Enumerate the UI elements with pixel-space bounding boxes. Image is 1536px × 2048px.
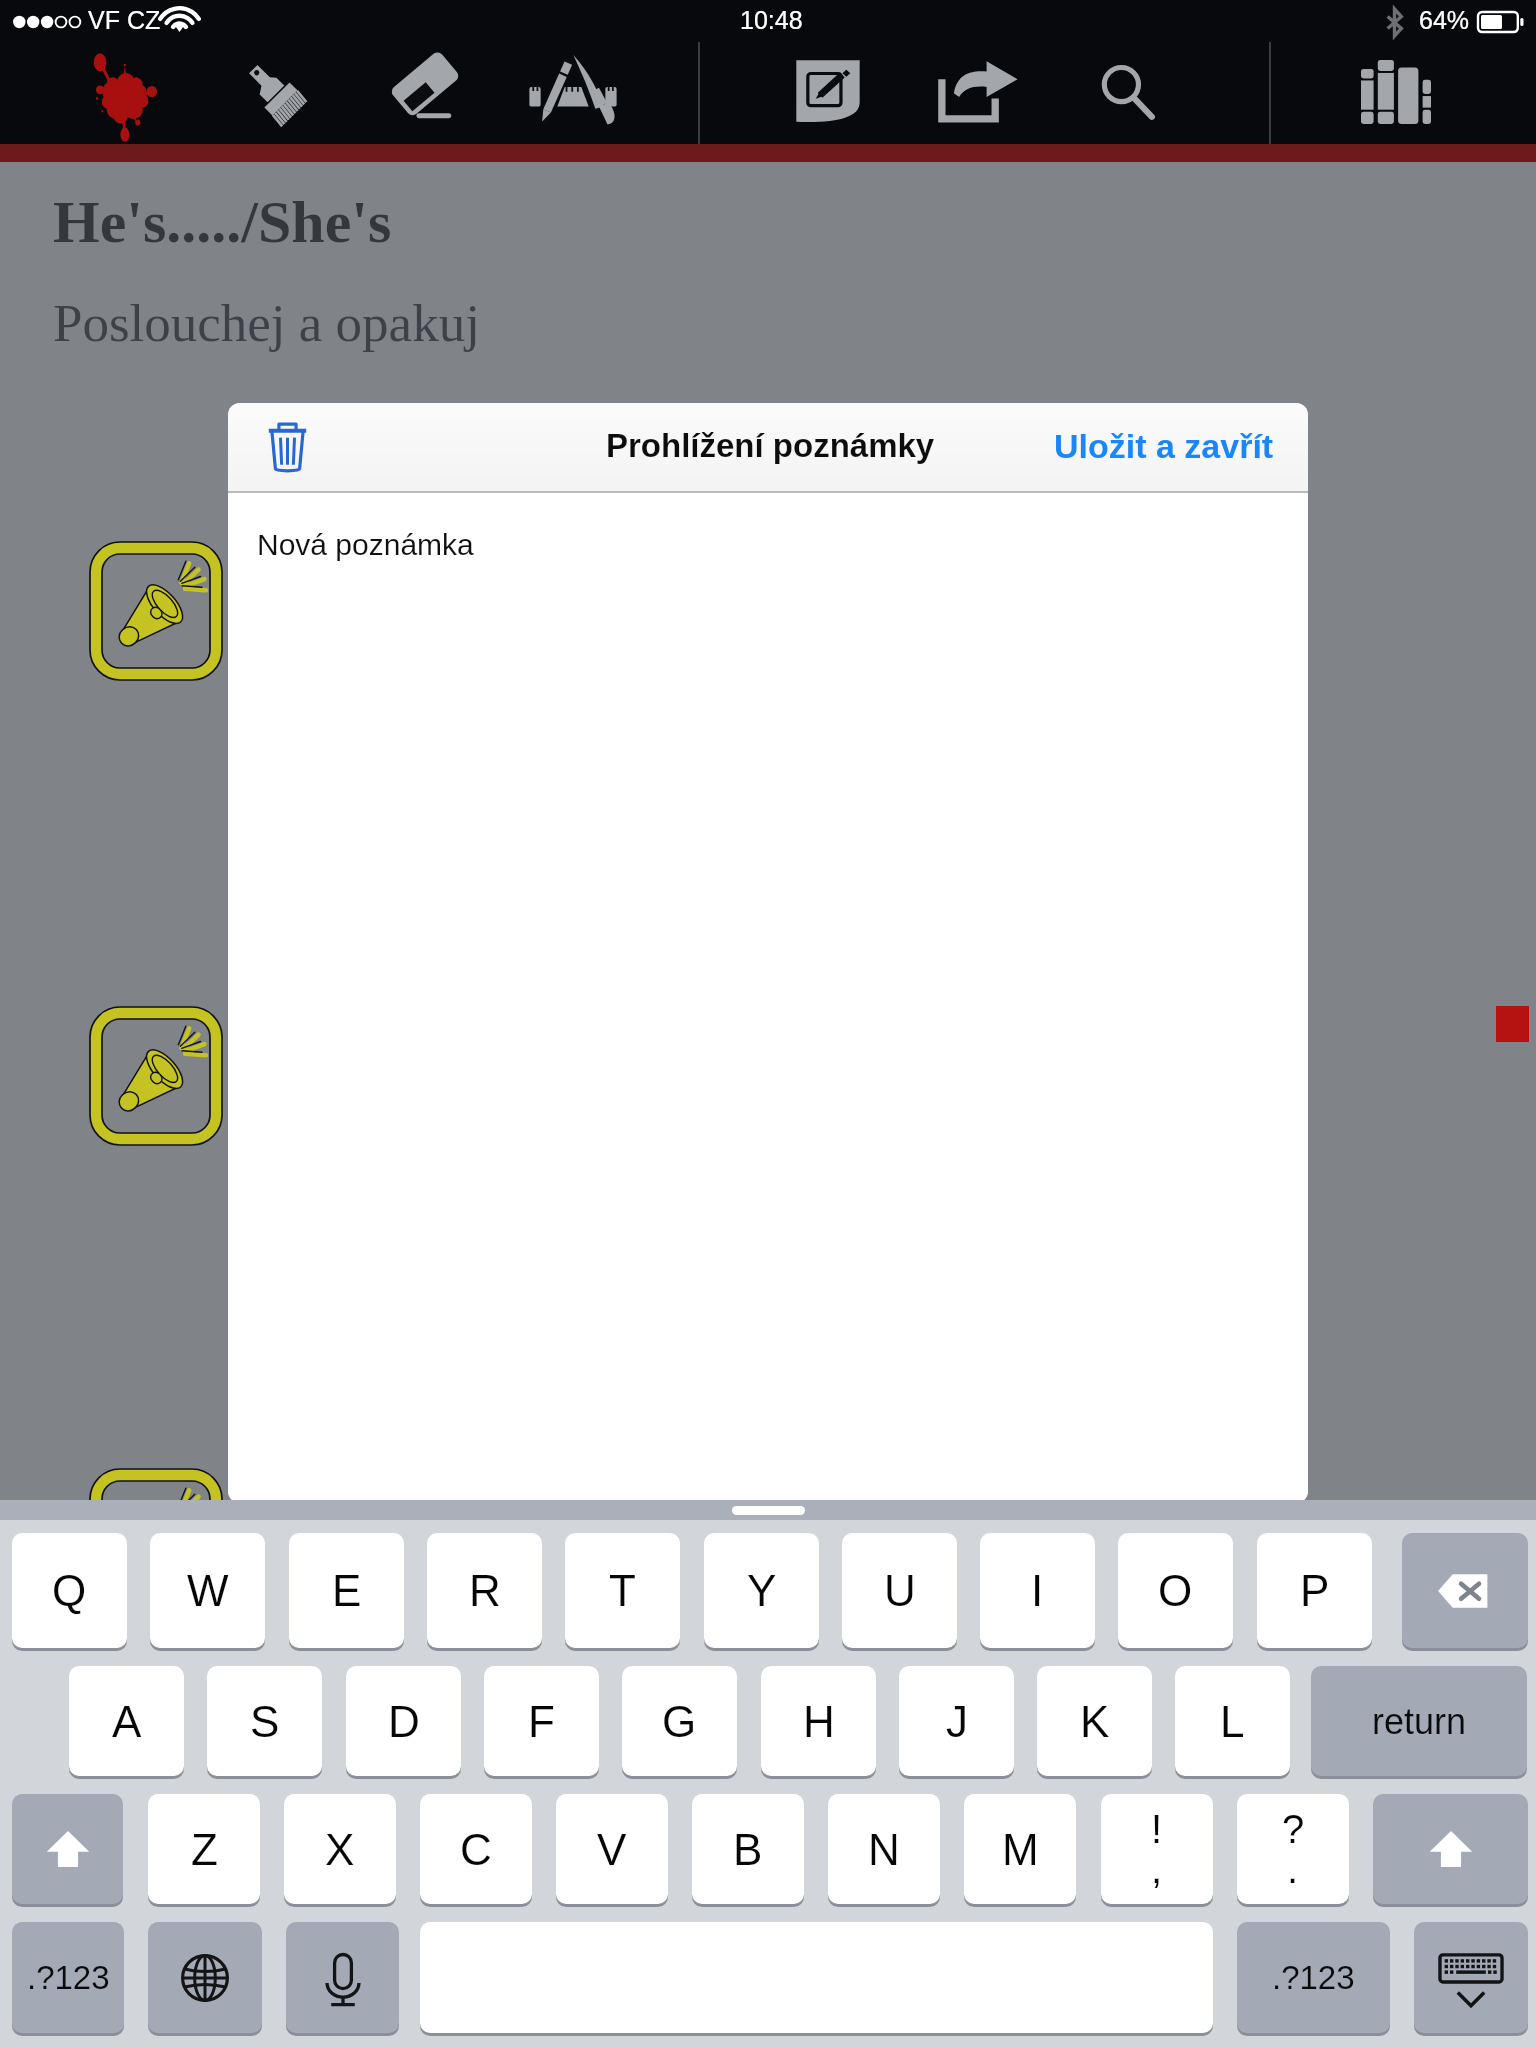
staticText: F [528, 1697, 555, 1746]
staticText: X [325, 1825, 355, 1874]
button[interactable]: .?123 [1237, 1922, 1390, 2033]
button[interactable]: D [346, 1666, 461, 1776]
button[interactable]: L [1175, 1666, 1290, 1776]
button[interactable]: I [980, 1533, 1095, 1648]
staticText: Uložit a zavřít [1054, 427, 1274, 465]
staticText: M [1002, 1825, 1039, 1874]
staticText: T [609, 1566, 636, 1615]
staticText: Poslouchej a opakuj [53, 294, 480, 353]
staticText: Y [747, 1566, 777, 1615]
button[interactable]: Q [12, 1533, 127, 1648]
button[interactable]: Z [148, 1794, 260, 1904]
staticText: U [884, 1566, 916, 1615]
staticText: H [803, 1697, 835, 1746]
staticText: Z [191, 1825, 218, 1874]
button[interactable]: Backspace [1402, 1533, 1528, 1648]
button[interactable]: K [1037, 1666, 1152, 1776]
button[interactable]: Delete note [252, 412, 322, 480]
button[interactable]: .?123 [12, 1922, 124, 2033]
staticText: S [250, 1697, 280, 1746]
button[interactable]: Search [1097, 61, 1158, 123]
button[interactable]: Uložit a zavřít [1054, 427, 1274, 465]
button[interactable]: O [1118, 1533, 1233, 1648]
button[interactable]: A [69, 1666, 184, 1776]
button[interactable]: ? [1237, 1794, 1349, 1904]
button[interactable]: Play audio [86, 1465, 226, 1611]
button[interactable]: Library [1361, 58, 1431, 126]
staticText: D [388, 1697, 420, 1746]
button[interactable]: Hide keyboard [1414, 1922, 1528, 2033]
button[interactable]: W [150, 1533, 265, 1648]
button[interactable]: Brush [236, 56, 310, 126]
button[interactable]: ! [1101, 1794, 1213, 1904]
staticText: ? [1282, 1807, 1305, 1852]
button[interactable]: S [207, 1666, 322, 1776]
button[interactable]: M [964, 1794, 1076, 1904]
button[interactable]: R [427, 1533, 542, 1648]
staticText: K [1080, 1697, 1110, 1746]
button[interactable]: E [289, 1533, 404, 1648]
button[interactable]: G [622, 1666, 737, 1776]
staticText: He's...../She's [53, 189, 392, 255]
button[interactable]: P [1257, 1533, 1372, 1648]
staticText: VF CZ [88, 6, 161, 34]
button[interactable]: Eraser [386, 54, 462, 130]
staticText: Q [52, 1566, 87, 1615]
staticText: 10:48 [740, 6, 803, 34]
staticText: B [733, 1825, 763, 1874]
button[interactable]: U [842, 1533, 957, 1648]
staticText: ! [1151, 1807, 1163, 1852]
staticText: E [332, 1566, 362, 1615]
button[interactable]: Tools [524, 52, 622, 130]
button[interactable]: Shift [12, 1794, 123, 1904]
staticText: L [1220, 1697, 1245, 1746]
staticText: .?123 [27, 1959, 110, 1996]
staticText: J [946, 1697, 968, 1746]
staticText: Nová poznámka [257, 528, 474, 562]
button[interactable]: J [899, 1666, 1014, 1776]
button[interactable]: Change language [148, 1922, 262, 2033]
button[interactable]: Dictation [286, 1922, 399, 2033]
button[interactable]: Play audio [86, 538, 226, 684]
staticText: G [662, 1697, 697, 1746]
staticText: W [187, 1566, 229, 1615]
staticText: . [1287, 1847, 1299, 1892]
staticText: V [597, 1825, 627, 1874]
button[interactable]: Keyboard handle [732, 1506, 805, 1515]
button[interactable]: N [828, 1794, 940, 1904]
button[interactable]: T [565, 1533, 680, 1648]
staticText: return [1372, 1701, 1467, 1741]
button[interactable]: B [692, 1794, 804, 1904]
staticText: 64% [1419, 6, 1470, 34]
staticText: I [1031, 1566, 1044, 1615]
staticText: .?123 [1272, 1959, 1355, 1996]
button[interactable]: V [556, 1794, 668, 1904]
staticText: P [1300, 1566, 1330, 1615]
button[interactable]: H [761, 1666, 876, 1776]
staticText: Prohlížení poznámky [606, 427, 935, 464]
staticText: R [469, 1566, 501, 1615]
staticText: C [460, 1825, 492, 1874]
staticText: A [112, 1697, 142, 1746]
button[interactable]: Edit [792, 56, 864, 126]
button[interactable]: F [484, 1666, 599, 1776]
staticText: N [868, 1825, 900, 1874]
button[interactable]: Y [704, 1533, 819, 1648]
button[interactable]: Ink [86, 52, 160, 138]
button[interactable]: Shift [1373, 1794, 1528, 1904]
staticText: , [1151, 1847, 1163, 1892]
button[interactable]: X [284, 1794, 396, 1904]
button[interactable]: Share [935, 60, 1021, 124]
button[interactable]: C [420, 1794, 532, 1904]
button[interactable]: Play audio [86, 1003, 226, 1149]
staticText: O [1158, 1566, 1193, 1615]
button[interactable]: return [1311, 1666, 1527, 1776]
